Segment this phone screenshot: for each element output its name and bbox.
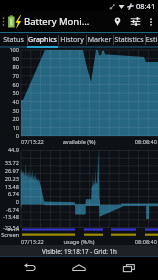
button[interactable]: More options <box>144 11 157 32</box>
button[interactable]: Markers <box>86 33 113 46</box>
button[interactable]: History <box>58 33 86 46</box>
staticText: 0 <box>0 198 19 206</box>
staticText: Visible: 19:18:17 - Grid: 1h <box>42 247 117 255</box>
button[interactable]: Recent apps <box>108 256 150 280</box>
staticText: History <box>58 35 86 45</box>
staticText: 6.74 <box>0 190 19 198</box>
staticText: 08:08:40 <box>118 138 157 146</box>
staticText: 44.9 <box>0 146 19 154</box>
staticText: Battery Moni... <box>24 15 108 28</box>
staticText: 08:08:40 <box>118 238 157 245</box>
staticText: Plug <box>0 226 19 231</box>
staticText: 0 <box>0 132 19 140</box>
staticText: -6.74 <box>0 206 19 214</box>
button[interactable]: Marker <box>108 11 126 32</box>
staticText: Graphics <box>27 35 58 45</box>
button[interactable]: Back <box>8 256 50 280</box>
staticText: 60 <box>0 81 19 89</box>
staticText: 100 <box>0 46 19 54</box>
staticText: 30 <box>0 107 19 115</box>
button[interactable]: Status <box>0 33 27 46</box>
staticText: 50 <box>0 89 19 97</box>
staticText: 90 <box>0 55 19 63</box>
staticText: Markers <box>86 35 113 45</box>
staticText: 70 <box>0 72 19 80</box>
button[interactable]: Display settings <box>126 11 144 32</box>
staticText: Statistics <box>113 35 145 45</box>
staticText: 10 <box>0 124 19 132</box>
staticText: 40 <box>0 98 19 106</box>
staticText: -13.48 <box>0 213 19 221</box>
staticText: -22.54 <box>0 224 19 232</box>
staticText: 26.97 <box>0 167 19 175</box>
button[interactable]: Estimations <box>145 33 158 46</box>
staticText: 13.48 <box>0 183 19 191</box>
staticText: Estimations <box>145 35 158 45</box>
staticText: 07/13:22 <box>21 238 44 245</box>
staticText: 07/13:22 <box>21 138 61 146</box>
staticText: 20 <box>0 115 19 123</box>
staticText: usage (%/h) <box>55 238 103 245</box>
button[interactable]: Home <box>58 256 100 280</box>
staticText: Screen <box>0 231 19 237</box>
staticText: 80 <box>0 63 19 71</box>
staticText: 33.72 <box>0 159 19 167</box>
staticText: 20.23 <box>0 175 19 183</box>
staticText: 08:41 <box>136 1 156 11</box>
staticText: Status <box>0 35 27 45</box>
button[interactable]: Graphics <box>27 33 58 46</box>
staticText: available (%) <box>55 138 103 146</box>
button[interactable]: Statistics <box>113 33 145 46</box>
